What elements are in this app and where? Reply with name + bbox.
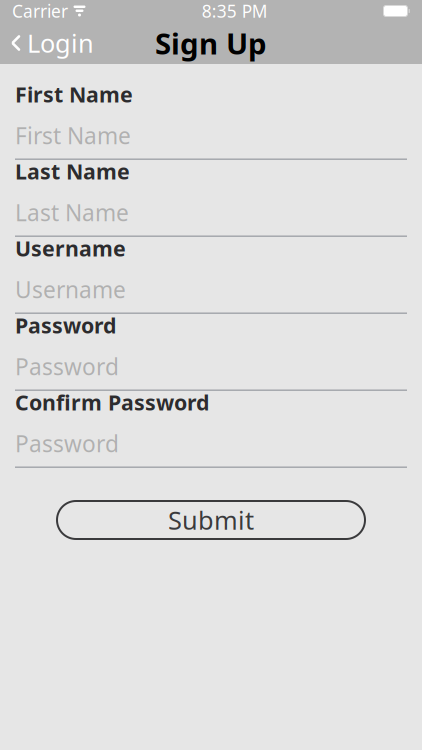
staticText: First Name xyxy=(15,80,133,108)
staticText: Last Name xyxy=(15,157,130,185)
staticText: Username xyxy=(15,274,126,304)
button[interactable]: Login xyxy=(0,22,104,64)
staticText: Sign Up xyxy=(155,23,267,62)
button[interactable]: Submit xyxy=(57,501,365,539)
staticText: Password xyxy=(15,311,116,339)
staticText: Password xyxy=(15,428,119,458)
staticText: First Name xyxy=(15,120,131,150)
staticText: Login xyxy=(27,26,94,60)
staticText: 8:35 PM xyxy=(202,0,268,22)
staticText: Last Name xyxy=(15,197,129,227)
staticText: Carrier xyxy=(12,0,68,22)
staticText: Username xyxy=(15,234,126,262)
staticText: Confirm Password xyxy=(15,388,209,416)
staticText: Submit xyxy=(168,503,254,537)
staticText: Password xyxy=(15,351,119,381)
